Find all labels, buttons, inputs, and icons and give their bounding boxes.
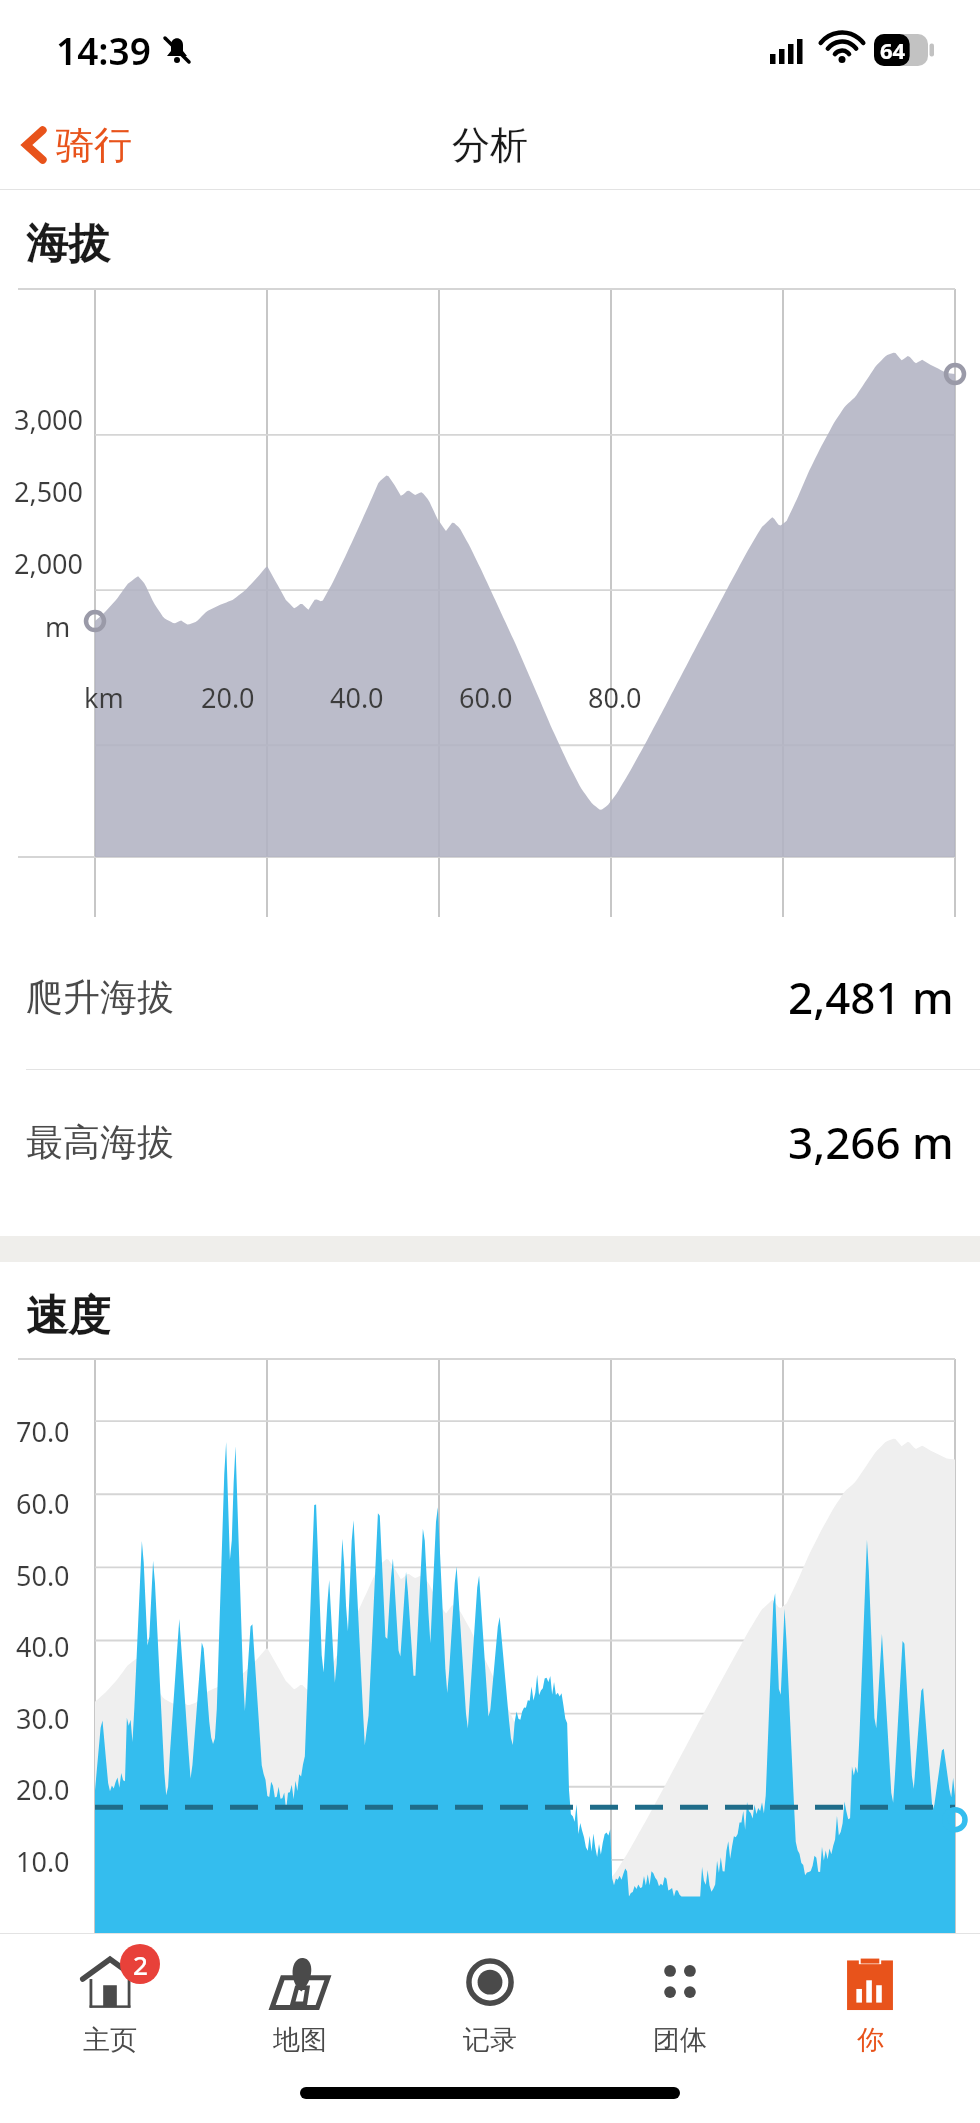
staticText: 2,500 <box>14 473 84 510</box>
staticText: 地图 <box>273 2023 327 2057</box>
staticText: 骑行 <box>56 121 132 169</box>
staticText: 70.0 <box>16 1413 70 1450</box>
staticText: 分析 <box>452 121 528 169</box>
staticText: 20.0 <box>16 1771 70 1808</box>
staticText: 60.0 <box>459 679 513 716</box>
staticText: 30.0 <box>16 1700 70 1737</box>
staticText: 40.0 <box>330 679 384 716</box>
staticText: 80.0 <box>588 679 642 716</box>
staticText: 20.0 <box>201 679 255 716</box>
button[interactable]: 70.0 <box>0 1357 980 1933</box>
button[interactable]: Home <box>30 1947 190 2063</box>
staticText: 速度 <box>26 1290 110 1343</box>
staticText: 团体 <box>653 2023 707 2057</box>
staticText: 40.0 <box>16 1628 70 1665</box>
button[interactable]: Profile <box>790 1947 950 2063</box>
staticText: 2,481 m <box>788 967 954 1027</box>
staticText: 10.0 <box>16 1843 70 1880</box>
staticText: 爬升海拔 <box>26 974 174 1021</box>
staticText: 2 <box>133 1947 148 1982</box>
staticText: 3,000 <box>14 401 84 438</box>
staticText: 海拔 <box>26 218 110 271</box>
staticText: 最高海拔 <box>26 1119 174 1166</box>
button[interactable]: 爬升海拔 <box>0 925 980 1070</box>
staticText: 64 <box>880 35 906 65</box>
button[interactable]: 3,000 <box>0 285 980 925</box>
staticText: m <box>45 608 71 645</box>
button[interactable]: Map <box>220 1947 380 2063</box>
staticText: 50.0 <box>16 1557 70 1594</box>
staticText: 主页 <box>83 2023 137 2057</box>
staticText: 记录 <box>463 2023 517 2057</box>
button[interactable]: 骑行 <box>0 111 156 179</box>
staticText: 3,266 m <box>788 1112 954 1172</box>
button[interactable]: Groups <box>600 1947 760 2063</box>
staticText: 60.0 <box>16 1485 70 1522</box>
button[interactable]: Record <box>410 1947 570 2063</box>
button[interactable]: 最高海拔 <box>0 1070 980 1214</box>
staticText: 14:39 <box>56 25 151 75</box>
staticText: km <box>84 679 124 716</box>
staticText: 2,000 <box>14 545 84 582</box>
staticText: 你 <box>857 2023 884 2057</box>
